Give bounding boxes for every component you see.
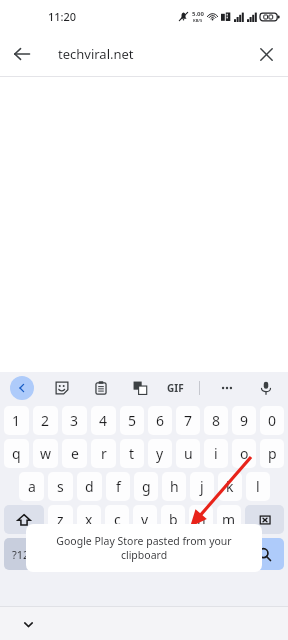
- staticText: l: [256, 477, 260, 496]
- button[interactable]: o: [232, 439, 256, 468]
- staticText: z: [57, 510, 64, 529]
- button[interactable]: f: [106, 472, 130, 501]
- button[interactable]: 3: [62, 406, 87, 435]
- button[interactable]: q: [4, 439, 29, 468]
- button[interactable]: ?123: [4, 538, 43, 570]
- button[interactable]: techviral.net: [44, 32, 244, 76]
- staticText: m: [222, 510, 236, 529]
- button[interactable]: Hide keyboard: [16, 612, 40, 636]
- button[interactable]: 7: [176, 406, 200, 435]
- button[interactable]: b: [161, 505, 185, 534]
- button[interactable]: 9: [232, 406, 256, 435]
- button[interactable]: Stickers: [50, 376, 74, 400]
- staticText: j: [200, 477, 204, 496]
- button[interactable]: Translate: [128, 376, 152, 400]
- staticText: 2: [41, 411, 50, 430]
- button[interactable]: Voice input: [254, 376, 278, 400]
- staticText: s: [57, 477, 64, 496]
- button[interactable]: .: [218, 538, 240, 570]
- staticText: f: [116, 477, 121, 496]
- staticText: b: [169, 510, 178, 529]
- button[interactable]: z: [48, 505, 73, 534]
- button[interactable]: Search: [244, 538, 284, 570]
- staticText: GIF: [167, 381, 184, 395]
- button[interactable]: j: [190, 472, 214, 501]
- button[interactable]: English: [99, 538, 214, 570]
- button[interactable]: 5: [120, 406, 144, 435]
- button[interactable]: Emoji: [73, 538, 95, 570]
- staticText: y: [156, 444, 164, 463]
- staticText: 6: [156, 411, 165, 430]
- staticText: 5: [128, 411, 137, 430]
- staticText: ?123: [12, 547, 36, 562]
- button[interactable]: 6: [148, 406, 172, 435]
- button[interactable]: Close: [244, 32, 288, 76]
- staticText: English: [139, 547, 174, 561]
- staticText: h: [170, 477, 179, 496]
- button[interactable]: u: [176, 439, 200, 468]
- staticText: Google Play Store pasted from your clipb…: [40, 534, 248, 562]
- staticText: 7: [184, 411, 193, 430]
- staticText: r: [101, 444, 107, 463]
- button[interactable]: d: [77, 472, 102, 501]
- staticText: 5.00: [192, 10, 204, 18]
- button[interactable]: m: [217, 505, 241, 534]
- button[interactable]: Back: [0, 32, 44, 76]
- staticText: p: [268, 444, 277, 463]
- button[interactable]: Clipboard: [89, 376, 113, 400]
- staticText: x: [85, 510, 93, 529]
- staticText: g: [142, 477, 151, 496]
- staticText: i: [214, 444, 218, 463]
- button[interactable]: a: [19, 472, 44, 501]
- staticText: 4: [99, 411, 108, 430]
- staticText: 0: [268, 411, 277, 430]
- button[interactable]: k: [218, 472, 242, 501]
- button[interactable]: h: [162, 472, 186, 501]
- button[interactable]: s: [48, 472, 73, 501]
- button[interactable]: Shift: [4, 505, 44, 534]
- staticText: c: [114, 510, 121, 529]
- staticText: 11:20: [48, 9, 77, 24]
- staticText: 1: [12, 411, 21, 430]
- button[interactable]: r: [91, 439, 116, 468]
- button[interactable]: i: [204, 439, 228, 468]
- staticText: n: [197, 510, 206, 529]
- staticText: a: [28, 477, 36, 496]
- button[interactable]: g: [134, 472, 158, 501]
- button[interactable]: 8: [204, 406, 228, 435]
- button[interactable]: x: [77, 505, 101, 534]
- button[interactable]: 2: [33, 406, 58, 435]
- button[interactable]: y: [148, 439, 172, 468]
- staticText: techviral.net: [58, 45, 134, 63]
- staticText: t: [129, 444, 135, 463]
- staticText: 8: [212, 411, 221, 430]
- staticText: v: [141, 510, 149, 529]
- button[interactable]: 0: [260, 406, 284, 435]
- staticText: d: [85, 477, 94, 496]
- staticText: 9: [240, 411, 249, 430]
- button[interactable]: t: [120, 439, 144, 468]
- button[interactable]: v: [133, 505, 157, 534]
- button[interactable]: c: [105, 505, 129, 534]
- button[interactable]: ,: [47, 538, 69, 570]
- staticText: KB/S: [193, 18, 203, 23]
- button[interactable]: Google Play Store pasted from your clipb…: [26, 524, 262, 572]
- button[interactable]: e: [62, 439, 87, 468]
- button[interactable]: p: [260, 439, 284, 468]
- button[interactable]: n: [189, 505, 213, 534]
- button[interactable]: GIF: [167, 376, 184, 400]
- staticText: u: [184, 444, 193, 463]
- button[interactable]: More options: [215, 376, 239, 400]
- button[interactable]: 4: [91, 406, 116, 435]
- button[interactable]: l: [246, 472, 270, 501]
- staticText: q: [12, 444, 21, 463]
- staticText: o: [240, 444, 249, 463]
- staticText: w: [40, 444, 52, 463]
- button[interactable]: Expand toolbar: [10, 376, 34, 400]
- button[interactable]: Backspace: [245, 505, 284, 534]
- staticText: 3: [70, 411, 79, 430]
- button[interactable]: 1: [4, 406, 29, 435]
- button[interactable]: w: [33, 439, 58, 468]
